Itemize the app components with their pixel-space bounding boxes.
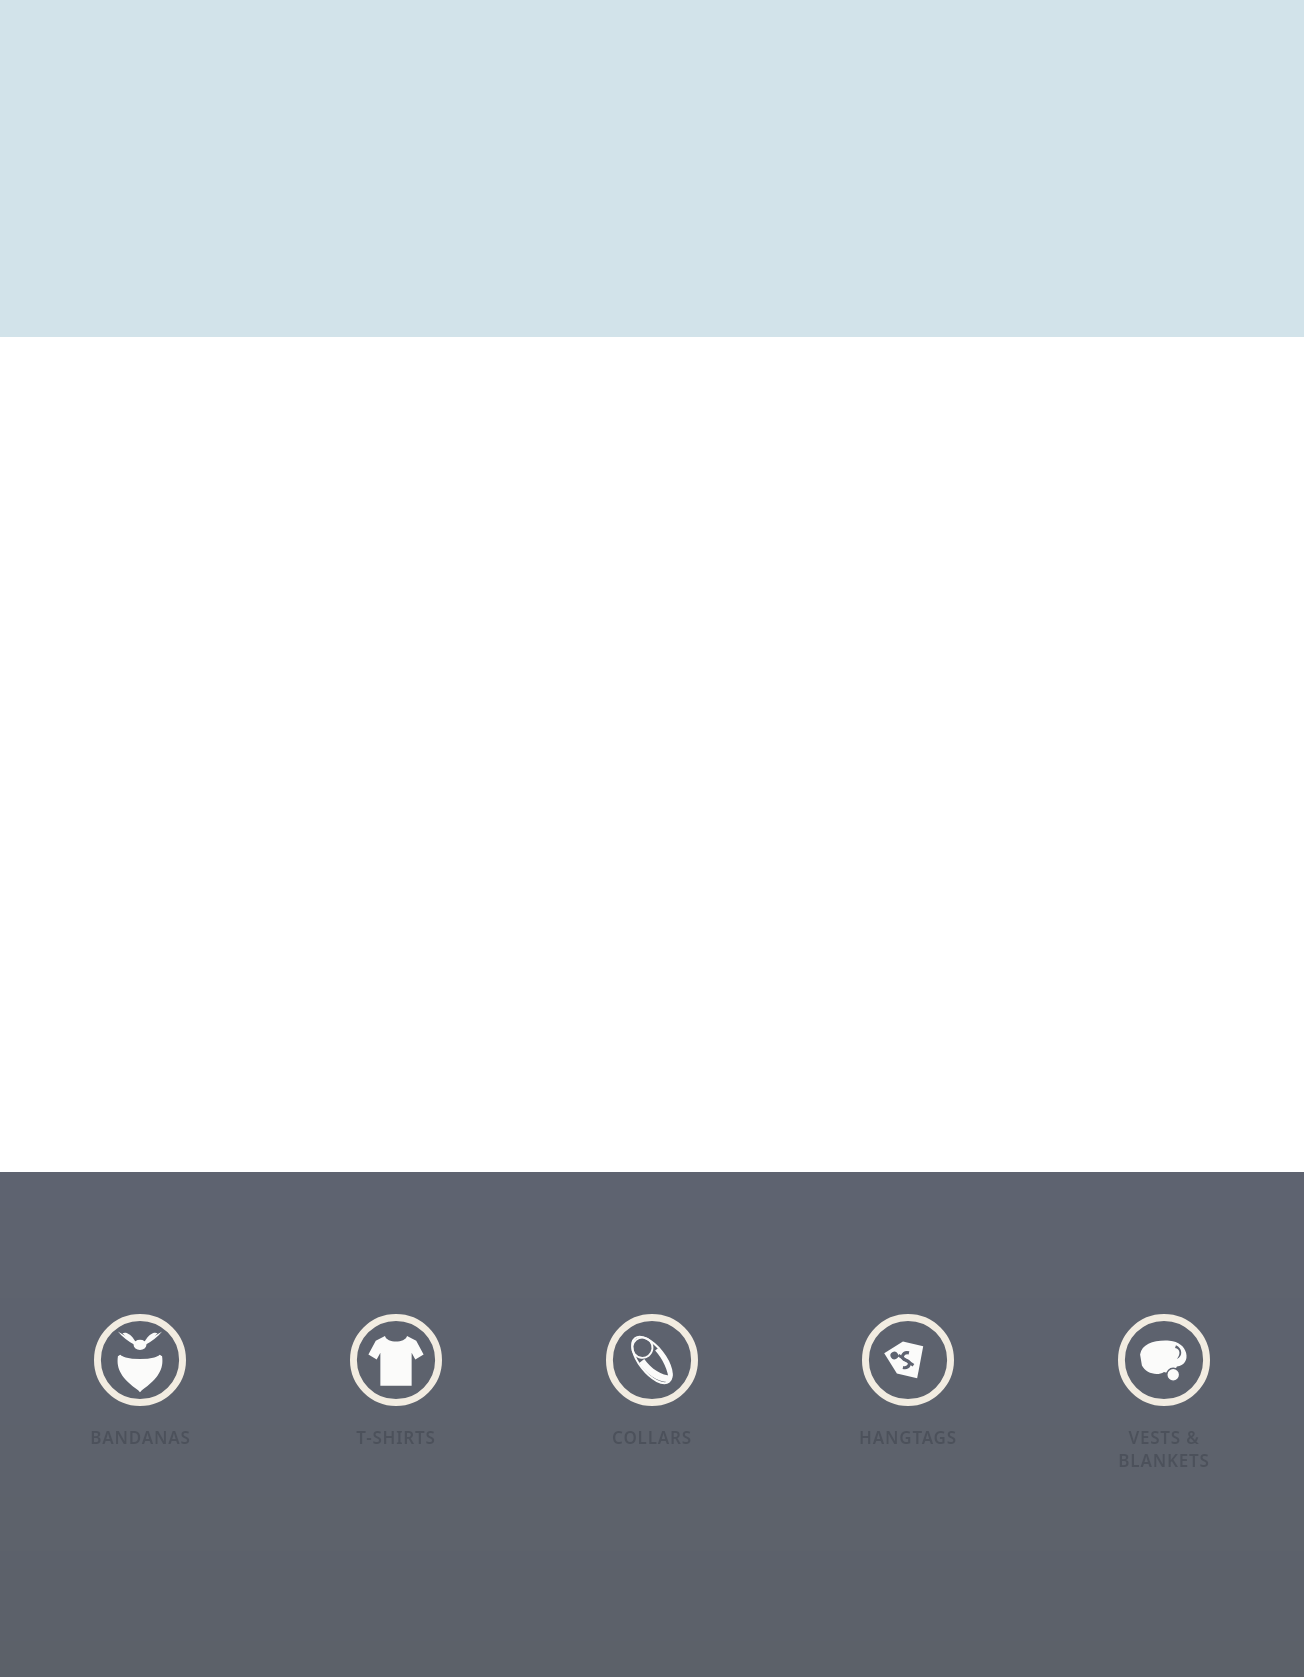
- button[interactable]: BANDANAS: [50, 1314, 230, 1449]
- staticText: COLLARS: [612, 1426, 692, 1449]
- button[interactable]: VESTS & BLANKETS: [1074, 1314, 1254, 1472]
- button[interactable]: HANGTAGS: [818, 1314, 998, 1449]
- button[interactable]: COLLARS: [562, 1314, 742, 1449]
- staticText: T-SHIRTS: [356, 1426, 436, 1449]
- staticText: BANDANAS: [90, 1426, 191, 1449]
- staticText: VESTS & BLANKETS: [1118, 1426, 1210, 1472]
- staticText: HANGTAGS: [859, 1426, 957, 1449]
- button[interactable]: T-SHIRTS: [306, 1314, 486, 1449]
